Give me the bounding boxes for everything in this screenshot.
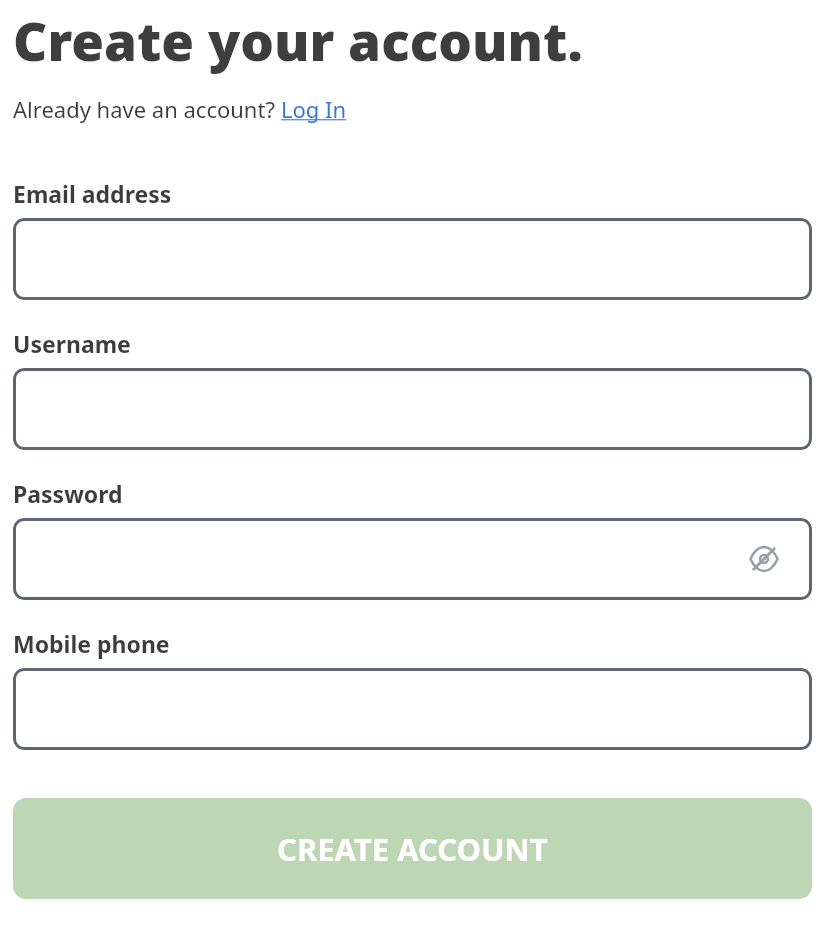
button[interactable] [13, 368, 812, 450]
staticText: Password [13, 478, 123, 509]
button[interactable]: Show password [13, 518, 812, 600]
staticText: CREATE ACCOUNT [277, 828, 548, 870]
button[interactable]: CREATE ACCOUNT [13, 798, 812, 899]
staticText: Create your account. [13, 4, 583, 76]
staticText: Email address [13, 178, 172, 209]
button[interactable]: Log In [281, 94, 347, 124]
staticText: Username [13, 328, 131, 359]
staticText: Mobile phone [13, 628, 170, 659]
button[interactable] [13, 218, 812, 300]
button[interactable] [13, 668, 812, 750]
staticText: Log In [281, 94, 347, 124]
button[interactable]: Show password [744, 539, 784, 579]
staticText: Already have an account? [13, 94, 281, 124]
